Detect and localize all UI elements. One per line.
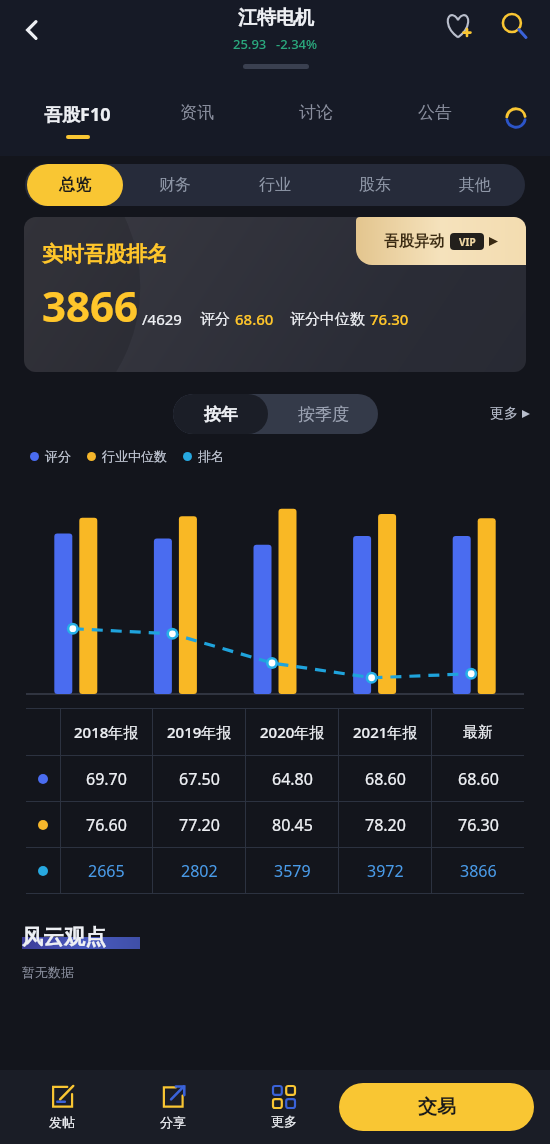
staticText: 2665 bbox=[88, 860, 125, 882]
button[interactable]: 吾股F10 bbox=[18, 90, 137, 156]
staticText: 按季度 bbox=[298, 404, 349, 425]
button[interactable]: 股东 bbox=[327, 164, 423, 206]
staticText: 总览 bbox=[59, 175, 91, 195]
button[interactable]: 财务 bbox=[127, 164, 223, 206]
staticText: 更多 bbox=[271, 1113, 297, 1129]
staticText: 财务 bbox=[159, 175, 191, 195]
staticText: 76.30 bbox=[458, 814, 499, 836]
button[interactable]: 交易 bbox=[339, 1083, 534, 1131]
staticText: 吾股异动 bbox=[384, 232, 444, 251]
staticText: 67.50 bbox=[179, 768, 220, 790]
staticText: 68.60 bbox=[365, 768, 406, 790]
staticText: 交易 bbox=[418, 1095, 456, 1119]
staticText: 吾股F10 bbox=[44, 102, 111, 127]
staticText: 发帖 bbox=[49, 1114, 75, 1130]
staticText: 76.30 bbox=[370, 309, 409, 329]
staticText: 行业中位数 bbox=[102, 448, 167, 464]
button[interactable]: 吾股异动 bbox=[24, 217, 526, 372]
staticText: 资讯 bbox=[180, 102, 214, 123]
button[interactable]: 其他 bbox=[427, 164, 523, 206]
staticText: 风云观点 bbox=[22, 924, 106, 950]
staticText: 更多 bbox=[490, 405, 518, 423]
button[interactable]: 按季度 bbox=[268, 394, 378, 434]
staticText: 77.20 bbox=[179, 814, 220, 836]
button[interactable]: 吾股异动 bbox=[356, 217, 526, 265]
staticText: 最新 bbox=[463, 723, 493, 742]
staticText: 2020年报 bbox=[260, 722, 325, 742]
staticText: 76.60 bbox=[86, 814, 127, 836]
button[interactable]: 更多 bbox=[490, 405, 530, 423]
staticText: 分享 bbox=[160, 1114, 186, 1130]
button[interactable]: 资讯 bbox=[137, 90, 256, 156]
staticText: 讨论 bbox=[299, 102, 333, 123]
staticText: 行业 bbox=[259, 175, 291, 195]
staticText: 排名 bbox=[198, 448, 224, 464]
staticText: 江特电机 bbox=[238, 6, 314, 30]
button[interactable]: 分享 bbox=[117, 1070, 228, 1144]
staticText: 公告 bbox=[418, 102, 452, 123]
staticText: 25.93 bbox=[233, 35, 267, 53]
button[interactable]: 讨论 bbox=[256, 90, 375, 156]
button[interactable]: Refresh bbox=[494, 96, 538, 140]
staticText: 2802 bbox=[181, 860, 218, 882]
button[interactable]: 更多 bbox=[228, 1070, 339, 1144]
button[interactable]: Add to favorites bbox=[436, 4, 480, 48]
button[interactable]: 按年 bbox=[173, 394, 268, 434]
button[interactable]: Back bbox=[8, 6, 56, 54]
staticText: 69.70 bbox=[86, 768, 127, 790]
button[interactable]: 总览 bbox=[27, 164, 123, 206]
staticText: 64.80 bbox=[272, 768, 313, 790]
staticText: 实时吾股排名 bbox=[42, 241, 168, 267]
staticText: 其他 bbox=[459, 175, 491, 195]
staticText: 3579 bbox=[274, 860, 311, 882]
button[interactable]: 发帖 bbox=[6, 1070, 117, 1144]
staticText: 评分 bbox=[200, 310, 230, 329]
staticText: 2018年报 bbox=[74, 722, 139, 742]
staticText: 68.60 bbox=[458, 768, 499, 790]
staticText: 2019年报 bbox=[167, 722, 232, 742]
staticText: 3866 bbox=[460, 860, 497, 882]
staticText: 3866 bbox=[42, 277, 139, 334]
staticText: 评分中位数 bbox=[290, 310, 365, 329]
staticText: 股东 bbox=[359, 175, 391, 195]
staticText: 68.60 bbox=[235, 309, 274, 329]
staticText: VIP bbox=[459, 235, 476, 249]
staticText: -2.34% bbox=[276, 35, 318, 53]
staticText: 80.45 bbox=[272, 814, 313, 836]
staticText: /4629 bbox=[142, 309, 182, 329]
staticText: 3972 bbox=[367, 860, 404, 882]
staticText: 暂无数据 bbox=[22, 964, 74, 980]
button[interactable]: 行业 bbox=[227, 164, 323, 206]
button[interactable]: 公告 bbox=[375, 90, 494, 156]
button[interactable]: Search bbox=[492, 4, 536, 48]
staticText: 78.20 bbox=[365, 814, 406, 836]
staticText: 按年 bbox=[204, 404, 238, 425]
staticText: 2021年报 bbox=[353, 722, 418, 742]
staticText: 评分 bbox=[45, 448, 71, 464]
